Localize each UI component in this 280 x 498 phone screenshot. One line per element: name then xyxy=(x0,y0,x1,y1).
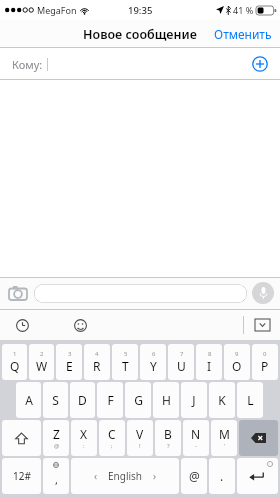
staticText: E xyxy=(66,358,73,374)
staticText: Q xyxy=(10,358,20,374)
staticText: ' xyxy=(224,442,226,450)
button[interactable]: H xyxy=(153,382,179,418)
staticText: 1 xyxy=(13,350,17,358)
button[interactable]: 5 xyxy=(112,344,138,380)
button[interactable]: Камера xyxy=(6,281,30,305)
button[interactable]: Z xyxy=(43,420,69,456)
staticText: 4 xyxy=(95,350,99,358)
staticText: ? xyxy=(167,442,170,450)
staticText: MegaFon xyxy=(37,4,77,16)
staticText: O xyxy=(232,358,242,374)
staticText: Z xyxy=(53,426,60,442)
staticText: V xyxy=(136,426,144,442)
button[interactable]: X xyxy=(71,420,97,456)
button[interactable] xyxy=(34,284,247,303)
staticText: @ xyxy=(54,442,60,450)
staticText: B xyxy=(164,426,172,442)
staticText: English xyxy=(108,469,143,483)
staticText: 7 xyxy=(180,350,184,358)
button[interactable]: G xyxy=(125,382,151,418)
staticText: H xyxy=(162,392,171,408)
button[interactable]: @ xyxy=(181,458,207,494)
button[interactable]: 7 xyxy=(168,344,194,380)
staticText: C xyxy=(108,426,116,442)
button[interactable]: Голосовой ввод xyxy=(252,282,274,304)
staticText: Y xyxy=(150,358,157,374)
button[interactable]: Удалить xyxy=(239,420,278,456)
button[interactable]: 4 xyxy=(84,344,110,380)
staticText: - xyxy=(195,442,197,450)
staticText: : xyxy=(83,442,85,450)
staticText: 12# xyxy=(13,469,31,483)
button[interactable]: Последние xyxy=(12,315,32,335)
button[interactable]: Отменить xyxy=(206,22,280,46)
staticText: S xyxy=(52,392,59,408)
button[interactable]: 6 xyxy=(140,344,166,380)
button[interactable]: D xyxy=(70,382,95,418)
staticText: 9 xyxy=(235,350,239,358)
button[interactable]: Ввод xyxy=(237,458,278,494)
staticText: J xyxy=(192,392,196,408)
button[interactable]: A xyxy=(16,382,41,418)
staticText: 3 xyxy=(68,350,72,358)
staticText: I xyxy=(207,358,212,374)
button[interactable]: N xyxy=(183,420,209,456)
button[interactable]: Shift xyxy=(2,420,41,456)
staticText: G xyxy=(134,392,143,408)
button[interactable]: S xyxy=(43,382,68,418)
staticText: ! xyxy=(139,442,141,450)
button[interactable]: Эмодзи xyxy=(70,315,90,335)
button[interactable]: Скрыть клавиатуру xyxy=(252,315,272,335)
staticText: ; xyxy=(111,442,113,450)
staticText: W xyxy=(36,358,48,374)
staticText: , xyxy=(55,472,58,487)
staticText: K xyxy=(218,392,226,408)
button[interactable]: C xyxy=(99,420,125,456)
button[interactable]: M xyxy=(211,420,237,456)
staticText: N xyxy=(191,426,201,442)
staticText: 19:35 xyxy=(128,4,153,17)
button[interactable]: Настройки xyxy=(43,458,69,494)
button[interactable]: ‹ xyxy=(71,458,179,494)
staticText: 5 xyxy=(124,350,128,358)
button[interactable]: . xyxy=(209,458,235,494)
staticText: P xyxy=(261,358,269,374)
button[interactable]: 9 xyxy=(224,344,250,380)
staticText: @ xyxy=(189,468,200,484)
staticText: 6 xyxy=(152,350,156,358)
staticText: ‹ xyxy=(94,469,98,483)
staticText: . xyxy=(220,468,224,484)
button[interactable]: B xyxy=(155,420,181,456)
button[interactable]: 0 xyxy=(252,344,278,380)
button[interactable]: J xyxy=(181,382,207,418)
staticText: 0 xyxy=(263,350,267,358)
staticText: A xyxy=(25,392,33,408)
button[interactable]: 1 xyxy=(2,344,27,380)
button[interactable]: 2 xyxy=(29,344,54,380)
staticText: 41 % xyxy=(233,4,254,16)
button[interactable]: V xyxy=(127,420,153,456)
button[interactable]: L xyxy=(237,382,263,418)
staticText: M xyxy=(219,426,230,442)
button[interactable]: 8 xyxy=(196,344,222,380)
staticText: F xyxy=(107,392,114,408)
button[interactable]: 3 xyxy=(56,344,82,380)
staticText: X xyxy=(80,426,88,442)
button[interactable]: F xyxy=(97,382,123,418)
staticText: › xyxy=(153,469,157,483)
staticText: Кому: xyxy=(12,57,43,72)
button[interactable]: Добавить контакт xyxy=(248,52,272,76)
button[interactable]: 12# xyxy=(2,458,41,494)
staticText: Отменить xyxy=(214,26,272,42)
staticText: Новое сообщение xyxy=(83,26,197,43)
staticText: R xyxy=(93,358,101,374)
staticText: D xyxy=(78,392,87,408)
staticText: 2 xyxy=(40,350,44,358)
staticText: U xyxy=(177,358,186,374)
staticText: 8 xyxy=(208,350,212,358)
staticText: L xyxy=(247,392,254,408)
staticText: T xyxy=(122,358,129,374)
button[interactable]: K xyxy=(209,382,235,418)
